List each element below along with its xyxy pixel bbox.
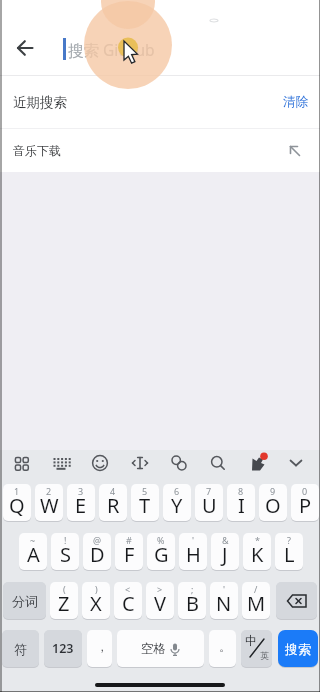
button[interactable]: )	[82, 582, 110, 619]
staticText: '	[192, 534, 195, 546]
staticText: H	[186, 541, 201, 568]
staticText: 近期搜索	[13, 94, 67, 111]
button[interactable]: 搜索	[278, 630, 318, 667]
staticText: &	[222, 534, 229, 546]
staticText: 英	[260, 650, 269, 661]
button[interactable]	[285, 452, 307, 474]
button[interactable]: 0	[291, 484, 319, 521]
staticText: Q	[9, 492, 25, 519]
staticText: *	[255, 534, 260, 546]
button[interactable]: ，	[87, 630, 112, 667]
button[interactable]	[89, 452, 111, 474]
staticText: )	[95, 583, 98, 595]
staticText: 符	[14, 641, 27, 657]
button[interactable]: 5	[131, 484, 159, 521]
button[interactable]: #	[115, 533, 143, 570]
staticText: (	[63, 583, 66, 595]
staticText: D	[90, 541, 105, 568]
button[interactable]: /	[242, 582, 270, 619]
button[interactable]: 2	[35, 484, 63, 521]
staticText: ，	[96, 639, 108, 654]
button[interactable]: 空格	[117, 630, 204, 667]
staticText: 。	[219, 639, 231, 654]
button[interactable]	[207, 452, 229, 474]
staticText: >	[157, 583, 163, 595]
staticText: 清除	[283, 94, 308, 110]
staticText: 8	[238, 485, 244, 497]
button[interactable]: (	[50, 582, 78, 619]
button[interactable]: 8	[227, 484, 255, 521]
staticText: X	[90, 590, 102, 617]
staticText: 搜索 GitHub	[68, 39, 155, 60]
staticText: 3	[78, 485, 84, 497]
staticText: 9	[270, 485, 276, 497]
staticText: ?	[287, 534, 291, 546]
button[interactable]: >	[146, 582, 174, 619]
button[interactable]	[11, 34, 39, 62]
staticText: P	[299, 492, 312, 519]
button[interactable]	[129, 452, 151, 474]
button[interactable]	[247, 452, 269, 474]
button[interactable]: ~	[19, 533, 47, 570]
button[interactable]: 6	[163, 484, 191, 521]
staticText: '	[223, 583, 226, 595]
staticText: T	[139, 492, 151, 519]
staticText: V	[154, 590, 166, 617]
staticText: <	[125, 583, 131, 595]
button[interactable]: @	[83, 533, 111, 570]
staticText: 分词	[12, 593, 38, 609]
button[interactable]: 符	[2, 630, 39, 667]
staticText: @	[93, 534, 102, 546]
staticText: 音乐下载	[13, 143, 61, 158]
staticText: Y	[171, 492, 183, 519]
button[interactable]: 。	[209, 630, 236, 667]
staticText: 2	[46, 485, 52, 497]
staticText: O	[265, 492, 281, 519]
button[interactable]	[168, 452, 190, 474]
button[interactable]: 9	[259, 484, 287, 521]
button[interactable]	[276, 582, 317, 619]
button[interactable]: 123	[44, 630, 82, 667]
button[interactable]: 音乐下载	[0, 129, 320, 172]
staticText: /	[254, 583, 258, 595]
staticText: S	[60, 541, 71, 568]
staticText: !	[64, 534, 67, 546]
button[interactable]: &	[211, 533, 239, 570]
staticText: 0	[302, 485, 308, 497]
button[interactable]	[11, 452, 33, 474]
staticText: 6	[174, 485, 180, 497]
staticText: K	[251, 541, 264, 568]
staticText: 5	[142, 485, 148, 497]
staticText: Z	[58, 590, 70, 617]
staticText: W	[40, 492, 59, 519]
button[interactable]: '	[179, 533, 207, 570]
staticText: ~	[30, 534, 36, 546]
button[interactable]	[50, 452, 72, 474]
button[interactable]: <	[114, 582, 142, 619]
staticText: 1	[14, 485, 20, 497]
button[interactable]: '	[210, 582, 238, 619]
staticText: 空格	[141, 641, 166, 657]
button[interactable]: !	[51, 533, 79, 570]
staticText: J	[222, 541, 228, 568]
button[interactable]: *	[243, 533, 271, 570]
button[interactable]: 4	[99, 484, 127, 521]
button[interactable]: ;	[178, 582, 206, 619]
staticText: U	[202, 492, 217, 519]
button[interactable]: 中	[241, 630, 272, 667]
staticText: 中	[245, 633, 257, 648]
button[interactable]: 1	[3, 484, 31, 521]
staticText: B	[186, 590, 199, 617]
staticText: 4	[110, 485, 116, 497]
staticText: ;	[191, 583, 194, 595]
button[interactable]: 分词	[3, 582, 46, 619]
button[interactable]: %	[147, 533, 175, 570]
staticText: G	[154, 541, 169, 568]
staticText: A	[27, 541, 40, 568]
button[interactable]: 3	[67, 484, 95, 521]
button[interactable]: 7	[195, 484, 223, 521]
staticText: R	[107, 492, 120, 519]
button[interactable]: 搜索 GitHub	[56, 30, 306, 66]
button[interactable]: 清除	[279, 90, 312, 114]
button[interactable]: ?	[275, 533, 303, 570]
